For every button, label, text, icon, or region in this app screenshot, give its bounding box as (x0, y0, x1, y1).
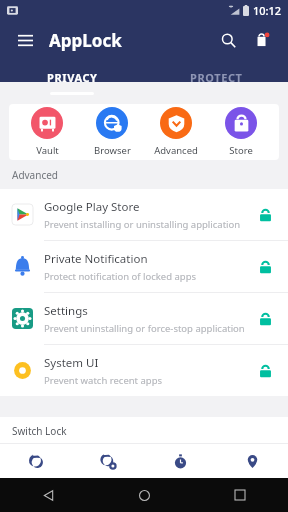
staticText: AppLock (49, 29, 122, 52)
staticText: Prevent installing or uninstalling appli… (44, 218, 241, 231)
staticText: Private Notification (44, 251, 148, 267)
staticText: Browser (94, 144, 131, 157)
button[interactable]: Recent apps (227, 482, 253, 508)
button[interactable]: Menu (12, 27, 38, 53)
button[interactable]: Location lock (216, 444, 288, 478)
button[interactable]: Lock Private Notification (254, 256, 276, 278)
button[interactable]: Google Play Store (0, 189, 288, 240)
button[interactable]: Timer lock (144, 444, 216, 478)
button[interactable]: System UI (0, 345, 288, 396)
button[interactable]: Lock Google Play Store (254, 204, 276, 226)
button[interactable]: Vault (16, 107, 78, 157)
button[interactable]: Scheduled lock (72, 444, 144, 478)
button[interactable]: Settings (0, 293, 288, 344)
button[interactable]: Browser (81, 107, 143, 157)
staticText: Prevent uninstalling or force-stop appli… (44, 322, 245, 335)
staticText: System UI (44, 355, 99, 371)
staticText: Advanced (154, 144, 198, 157)
staticText: Protect notification of locked apps (44, 270, 197, 283)
button[interactable]: Store offers (248, 26, 276, 54)
staticText: Google Play Store (44, 199, 140, 215)
button[interactable]: Back (35, 482, 61, 508)
staticText: PRIVACY (47, 70, 98, 85)
button[interactable]: Store (210, 107, 272, 157)
staticText: PROTECT (190, 70, 243, 85)
button[interactable]: Night mode lock (0, 444, 72, 478)
staticText: Prevent watch recent apps (44, 374, 163, 387)
button[interactable]: PRIVACY (0, 64, 144, 96)
button[interactable]: Lock Settings (254, 308, 276, 330)
staticText: Vault (36, 144, 59, 157)
button[interactable]: PROTECT (144, 64, 288, 96)
staticText: Switch Lock (12, 424, 67, 438)
staticText: Settings (44, 303, 88, 319)
button[interactable]: Private Notification (0, 241, 288, 292)
staticText: 10:12 (253, 3, 282, 18)
staticText: Advanced (12, 168, 58, 182)
button[interactable]: Lock System UI (254, 360, 276, 382)
staticText: Store (229, 144, 253, 157)
button[interactable]: Search (214, 26, 242, 54)
button[interactable]: Home (131, 482, 157, 508)
button[interactable]: Advanced (145, 107, 207, 157)
